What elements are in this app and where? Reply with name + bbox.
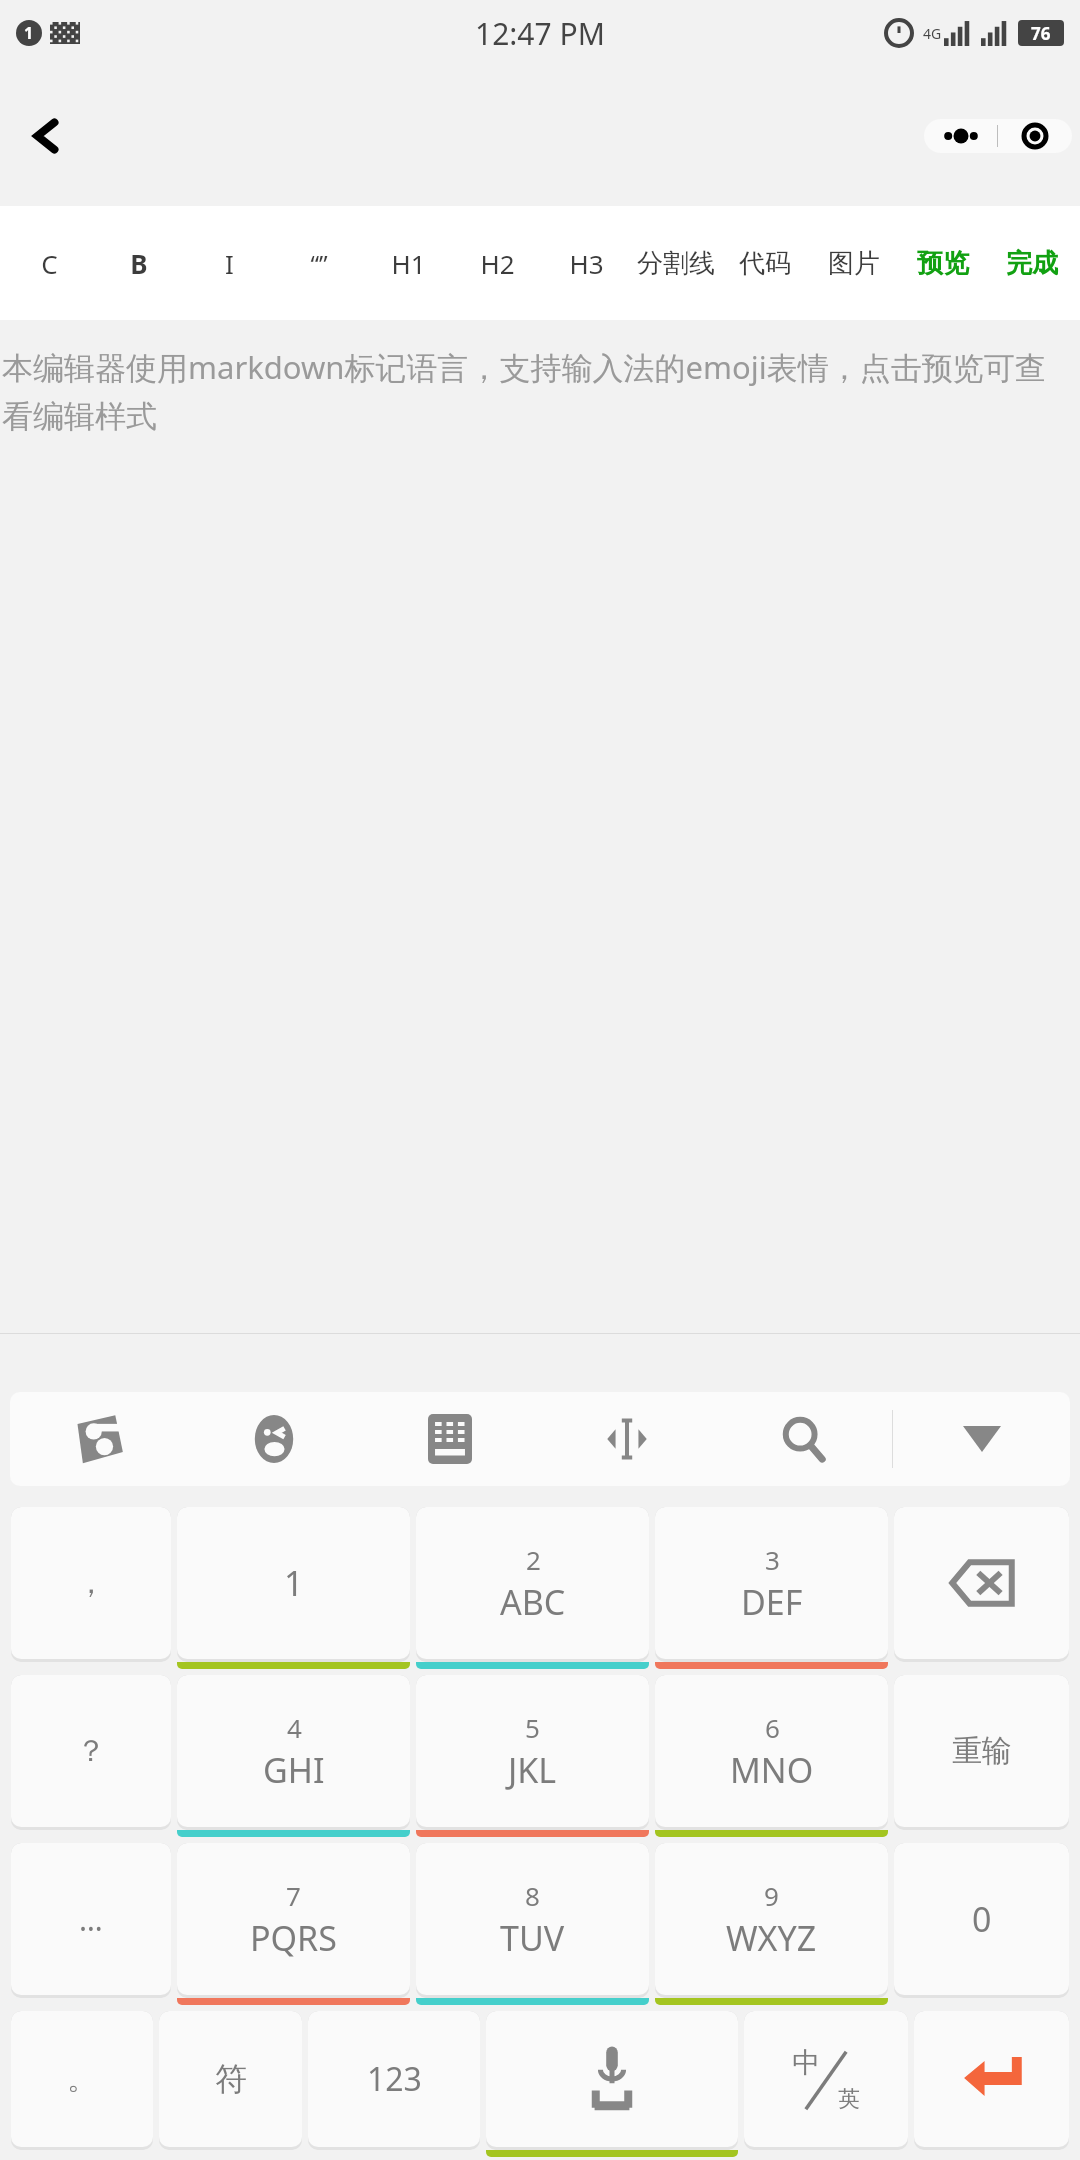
button[interactable]: 完成 xyxy=(987,206,1076,320)
staticText: “” xyxy=(310,247,328,280)
button[interactable]: 重输 xyxy=(894,1675,1069,1837)
button[interactable]: Delete xyxy=(894,1507,1069,1669)
button[interactable]: 。 xyxy=(11,2011,153,2157)
staticText: 图片 xyxy=(828,247,880,280)
staticText: 12:47 PM xyxy=(475,13,605,54)
staticText: 完成 xyxy=(1006,247,1058,280)
staticText: 2 xyxy=(526,1542,541,1577)
button[interactable]: Sogou input xyxy=(10,1392,186,1486)
button[interactable]: Hide keyboard xyxy=(893,1392,1070,1486)
button[interactable]: 7 xyxy=(177,1843,410,2005)
staticText: JKL xyxy=(508,1747,557,1793)
staticText: 9 xyxy=(764,1878,779,1913)
staticText: PQRS xyxy=(250,1915,337,1961)
staticText: 本编辑器使用markdown标记语言，支持输入法的emoji表情，点击预览可查看… xyxy=(2,346,1066,436)
staticText: 预览 xyxy=(917,247,969,280)
staticText: … xyxy=(79,1899,103,1940)
staticText: 。 xyxy=(67,2060,97,2098)
button[interactable]: 123 xyxy=(308,2011,480,2157)
button[interactable]: Search xyxy=(715,1392,892,1486)
button[interactable]: C xyxy=(4,206,94,320)
button[interactable]: I xyxy=(184,206,274,320)
button[interactable]: 5 xyxy=(416,1675,649,1837)
staticText: TUV xyxy=(500,1915,565,1961)
staticText: H1 xyxy=(391,246,426,281)
staticText: DEF xyxy=(741,1579,803,1625)
button[interactable]: 代码 xyxy=(720,206,809,320)
staticText: 5 xyxy=(525,1710,540,1745)
staticText: ？ xyxy=(76,1732,106,1770)
staticText: 分割线 xyxy=(637,247,715,280)
staticText: H2 xyxy=(480,246,515,281)
button[interactable]: 4 xyxy=(177,1675,410,1837)
staticText: 英 xyxy=(838,2085,860,2113)
button[interactable]: 1 xyxy=(177,1507,410,1669)
button[interactable]: 2 xyxy=(416,1507,649,1669)
staticText: 6 xyxy=(765,1710,780,1745)
staticText: 4G xyxy=(923,24,942,43)
button[interactable]: 6 xyxy=(655,1675,888,1837)
button[interactable]: “” xyxy=(274,206,364,320)
button[interactable]: More options xyxy=(924,119,997,153)
button[interactable]: ， xyxy=(11,1507,171,1669)
button[interactable]: H3 xyxy=(542,206,631,320)
staticText: GHI xyxy=(263,1747,325,1793)
staticText: 中 xyxy=(792,2045,820,2080)
button[interactable]: 图片 xyxy=(809,206,898,320)
staticText: C xyxy=(41,246,58,281)
staticText: MNO xyxy=(730,1747,814,1793)
button[interactable]: 8 xyxy=(416,1843,649,2005)
staticText: B xyxy=(130,246,148,281)
staticText: 重输 xyxy=(952,1732,1012,1770)
staticText: 1 xyxy=(284,1560,304,1606)
button[interactable]: 3 xyxy=(655,1507,888,1669)
staticText: 7 xyxy=(286,1878,301,1913)
staticText: ABC xyxy=(500,1579,566,1625)
button[interactable]: H1 xyxy=(364,206,453,320)
button[interactable]: H2 xyxy=(453,206,542,320)
button[interactable]: Close xyxy=(998,119,1072,153)
staticText: 76 xyxy=(1031,22,1051,45)
staticText: H3 xyxy=(569,246,604,281)
staticText: 0 xyxy=(972,1896,992,1942)
staticText: I xyxy=(225,246,234,281)
button[interactable]: 分割线 xyxy=(631,206,720,320)
staticText: 符 xyxy=(215,2059,247,2099)
button[interactable]: Enter xyxy=(914,2011,1069,2157)
button[interactable]: B xyxy=(94,206,184,320)
staticText: ， xyxy=(76,1564,106,1602)
button[interactable]: 0 xyxy=(894,1843,1069,2005)
staticText: 3 xyxy=(765,1542,780,1577)
staticText: 8 xyxy=(525,1878,540,1913)
button[interactable]: Back xyxy=(14,103,80,169)
staticText: WXYZ xyxy=(726,1915,817,1961)
button[interactable]: Keyboard xyxy=(362,1392,538,1486)
button[interactable]: Move cursor xyxy=(538,1392,715,1486)
button[interactable]: 符 xyxy=(159,2011,302,2157)
staticText: 1 xyxy=(24,22,34,44)
button[interactable]: Switch Chinese English xyxy=(744,2011,908,2157)
staticText: 代码 xyxy=(739,247,791,280)
button[interactable]: Emoji xyxy=(186,1392,362,1486)
button[interactable]: … xyxy=(11,1843,171,2005)
button[interactable]: Voice input xyxy=(486,2011,738,2157)
button[interactable]: 预览 xyxy=(898,206,987,320)
button[interactable]: 9 xyxy=(655,1843,888,2005)
button[interactable]: ？ xyxy=(11,1675,171,1837)
staticText: 4 xyxy=(287,1710,302,1745)
staticText: 123 xyxy=(367,2057,422,2101)
